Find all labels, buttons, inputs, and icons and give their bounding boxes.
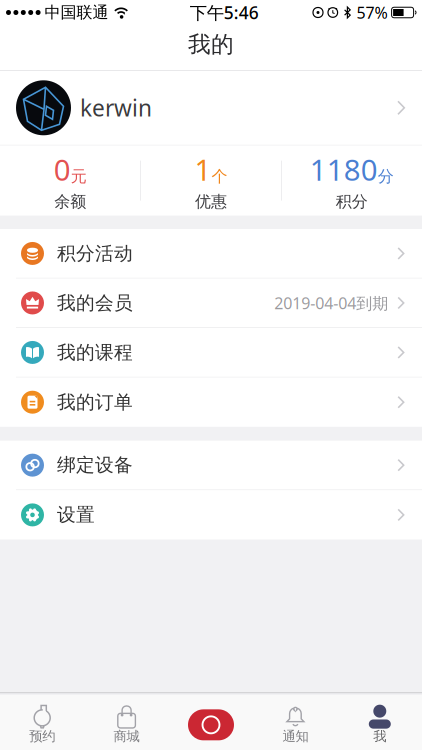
button[interactable]: 积分活动 (0, 229, 422, 279)
staticText: 预约 (29, 728, 55, 745)
button[interactable]: 通知 (253, 701, 338, 745)
staticText: 个 (211, 167, 227, 186)
button[interactable]: 商城 (84, 701, 169, 745)
staticText: 商城 (114, 728, 140, 745)
staticText: 我的订单 (57, 391, 133, 414)
button[interactable]: kerwin (0, 71, 422, 145)
staticText: 我的 (188, 31, 234, 58)
staticText: 元 (71, 167, 87, 186)
button[interactable]: 0 (0, 150, 141, 211)
staticText: 2019-04-04到期 (274, 292, 388, 313)
staticText: 优惠 (195, 192, 227, 211)
staticText: 积分 (336, 192, 368, 211)
button[interactable]: 设置 (0, 490, 422, 539)
staticText: 57% (357, 2, 388, 23)
button[interactable]: 预约 (0, 701, 84, 745)
staticText: kerwin (80, 93, 152, 123)
staticText: 1 (194, 150, 211, 189)
staticText: 余额 (54, 192, 86, 211)
staticText: 0 (54, 150, 71, 189)
button[interactable]: 我的会员 (0, 279, 422, 328)
staticText: 设置 (57, 503, 95, 526)
staticText: 分 (378, 167, 394, 186)
staticText: 下午5:46 (190, 1, 259, 24)
button[interactable]: 1 (141, 150, 281, 211)
button[interactable]: 1180 (281, 150, 422, 211)
staticText: 我的会员 (57, 291, 133, 314)
staticText: 绑定设备 (57, 454, 133, 477)
staticText: 我 (373, 728, 386, 745)
staticText: 1180 (310, 150, 378, 189)
staticText: 通知 (282, 728, 308, 745)
staticText: 积分活动 (57, 242, 133, 265)
button[interactable]: 开始训练 (169, 707, 253, 738)
staticText: 中国联通 (45, 3, 109, 22)
button[interactable]: 绑定设备 (0, 441, 422, 490)
button[interactable]: 我的订单 (0, 378, 422, 427)
button[interactable]: 我 (338, 701, 422, 745)
button[interactable]: 我的课程 (0, 328, 422, 378)
staticText: 我的课程 (57, 341, 133, 364)
